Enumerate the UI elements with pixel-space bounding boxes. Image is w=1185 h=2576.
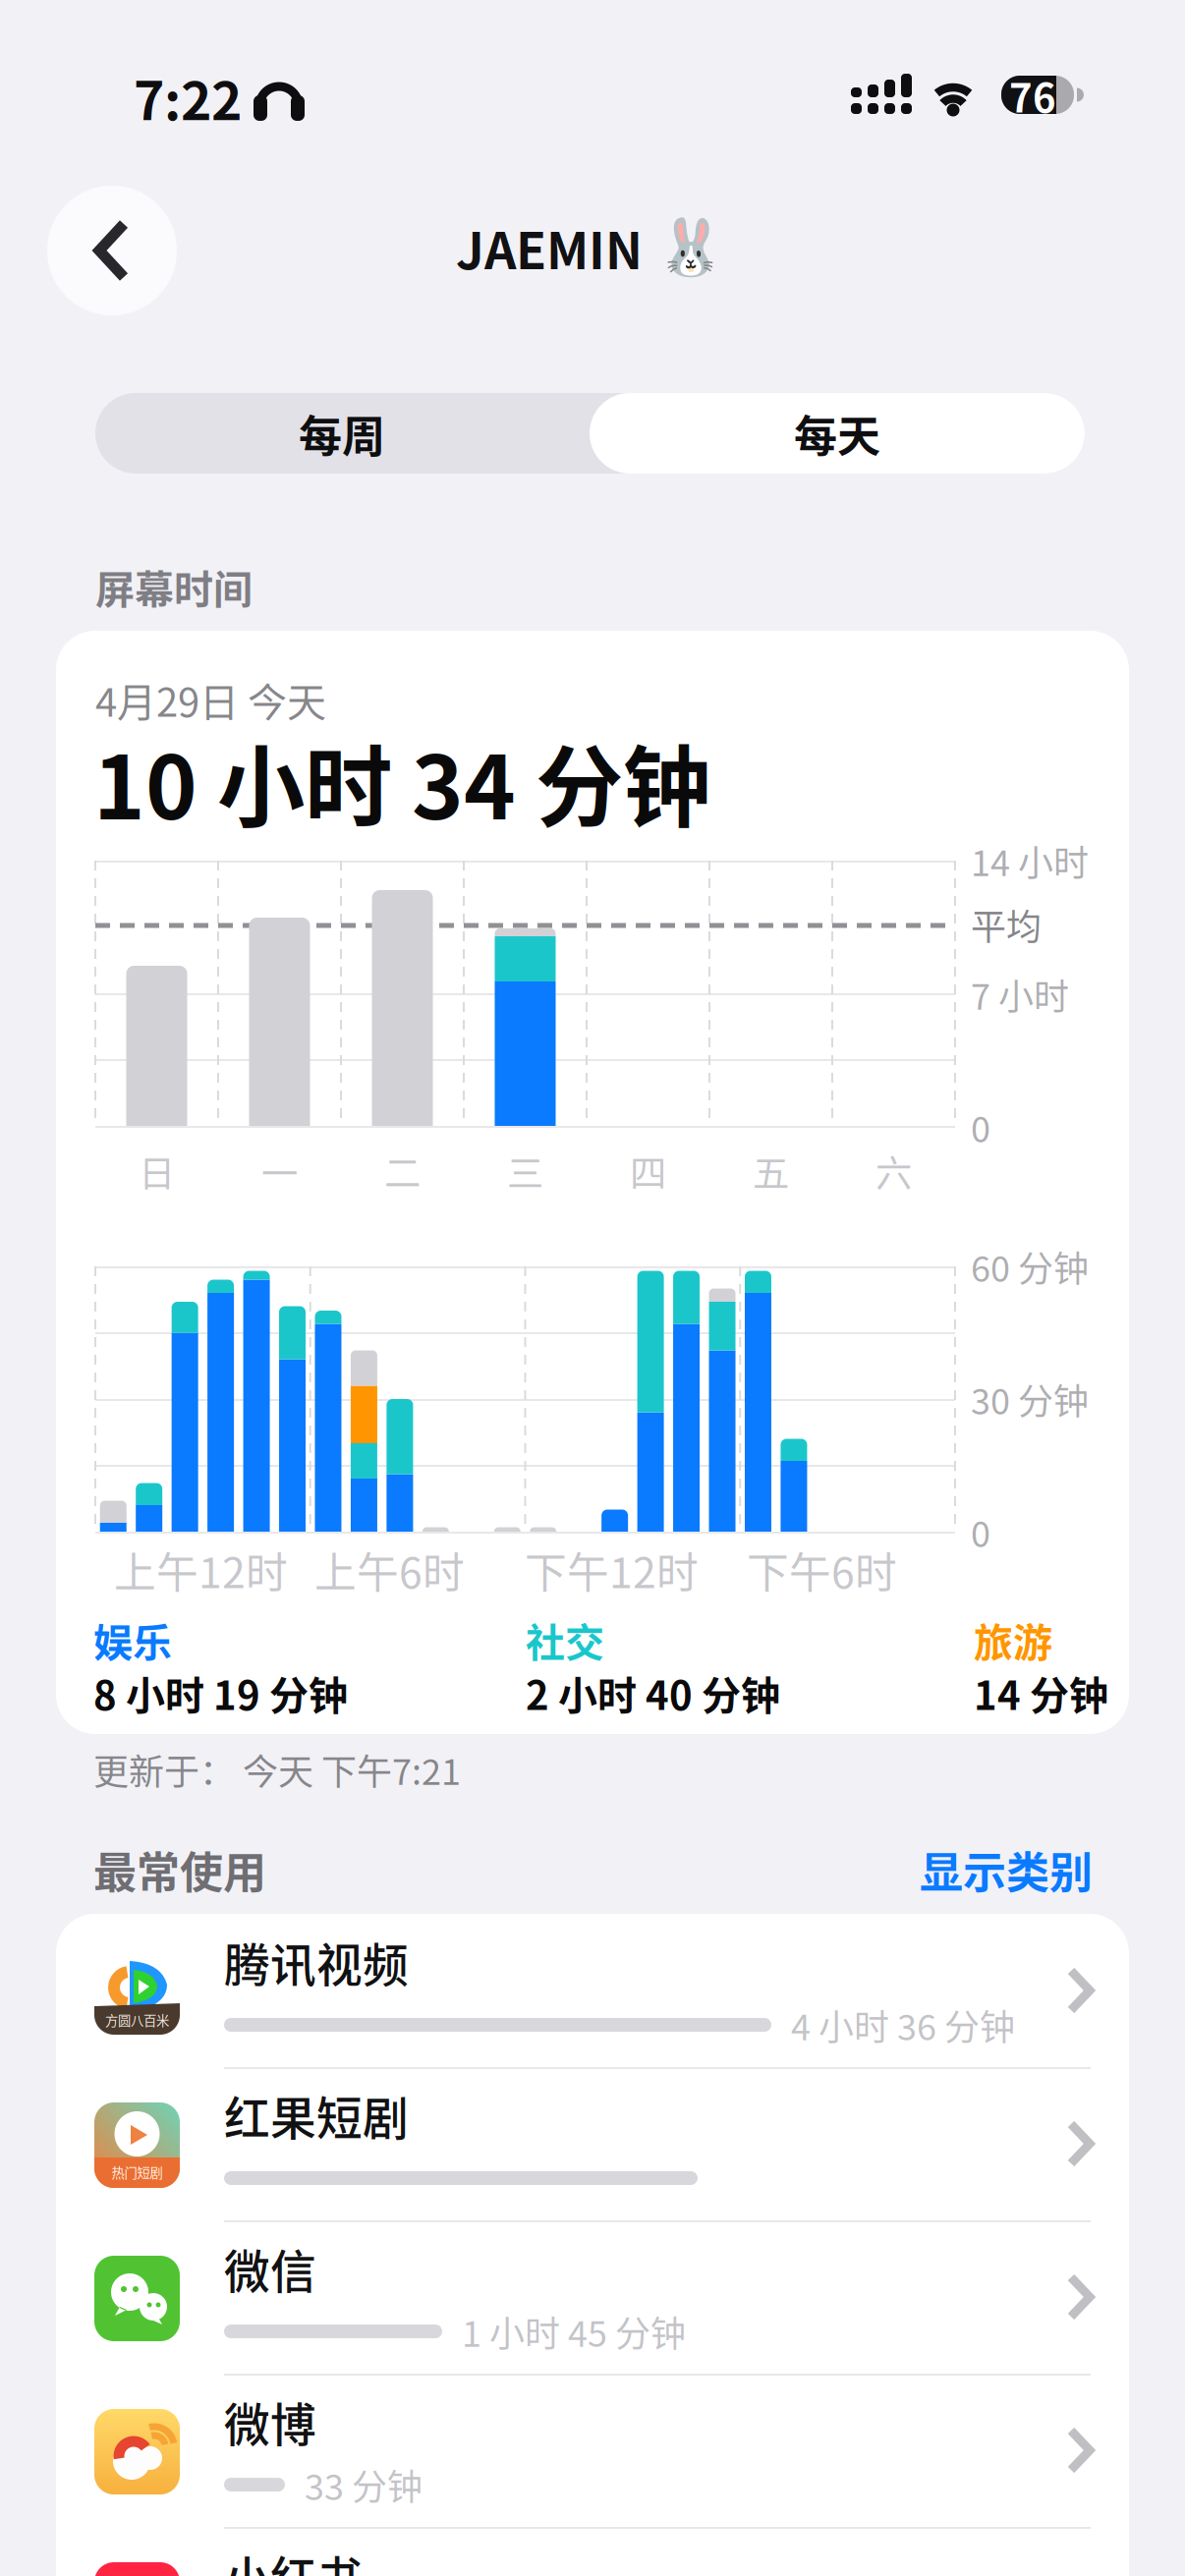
button[interactable]: 微信 (57, 2220, 1128, 2374)
staticText: 最常使用 (93, 1839, 266, 1900)
staticText: 7:22 (134, 60, 242, 134)
button[interactable]: 每周 (95, 393, 589, 474)
staticText: 下午6时 (747, 1540, 897, 1600)
staticText: 小红书 (224, 2543, 363, 2576)
button[interactable]: 微博 (57, 2374, 1128, 2527)
staticText: 14 小时 (971, 836, 1089, 886)
button[interactable]: 热门短剧 (57, 2067, 1128, 2220)
staticText: 2 小时 40 分钟 (526, 1665, 780, 1721)
staticText: 30 分钟 (971, 1374, 1089, 1424)
staticText: 🐰 (656, 215, 725, 280)
staticText: 屏幕时间 (95, 559, 253, 614)
staticText: 60 分钟 (971, 1241, 1089, 1291)
button[interactable]: 小红书 (57, 2527, 1128, 2576)
staticText: 14 分钟 (974, 1665, 1108, 1721)
staticText: 4月29日 今天 (95, 672, 326, 727)
staticText: 社交 (526, 1612, 604, 1668)
staticText: 五 (753, 1145, 789, 1197)
staticText: 每天 (794, 403, 880, 464)
staticText: 上午6时 (314, 1540, 465, 1600)
staticText: 0 (971, 1507, 990, 1557)
staticText: 二 (384, 1145, 421, 1197)
staticText: 三 (507, 1145, 543, 1197)
staticText: 一 (261, 1145, 298, 1197)
staticText: 四 (630, 1145, 666, 1197)
staticText: 更新于： 今天 下午7:21 (93, 1744, 461, 1794)
staticText: 下午12时 (525, 1540, 699, 1600)
button[interactable] (47, 186, 177, 315)
staticText: 红果短剧 (224, 2083, 409, 2148)
staticText: 六 (875, 1145, 912, 1197)
staticText: 显示类别 (920, 1839, 1093, 1900)
staticText: 日 (139, 1145, 175, 1197)
staticText: 0 (971, 1102, 990, 1152)
staticText: 10 小时 34 分钟 (93, 719, 710, 843)
staticText: 腾讯视频 (224, 1930, 409, 1994)
staticText: 33 分钟 (305, 2460, 423, 2510)
staticText: 每周 (299, 403, 385, 464)
staticText: 7 小时 (971, 969, 1069, 1019)
button[interactable]: 方圆八百米 (57, 1914, 1128, 2067)
staticText: 4 小时 36 分钟 (791, 2000, 1015, 2050)
button[interactable]: 显示类别 (920, 1839, 1093, 1900)
staticText: 1 小时 45 分钟 (462, 2306, 686, 2356)
staticText: 热门短剧 (112, 2163, 163, 2181)
staticText: 微博 (224, 2389, 316, 2454)
staticText: 旅游 (974, 1612, 1052, 1668)
staticText: 76 (1009, 68, 1056, 123)
staticText: 微信 (224, 2236, 316, 2301)
staticText: 娱乐 (93, 1612, 172, 1668)
staticText: JAEMIN (456, 212, 643, 283)
staticText: 平均 (971, 900, 1042, 949)
staticText: 上午12时 (114, 1540, 288, 1600)
staticText: 8 小时 19 分钟 (93, 1665, 348, 1721)
staticText: 方圆八百米 (105, 2011, 169, 2029)
button[interactable]: 每天 (590, 393, 1085, 474)
